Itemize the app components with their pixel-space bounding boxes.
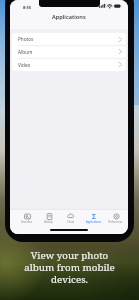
- button[interactable]: Cloud: [59, 212, 82, 227]
- staticText: Applications: [52, 13, 86, 21]
- staticText: View your photo album from mobile device…: [0, 249, 139, 286]
- button[interactable]: Album: [12, 45, 126, 58]
- button[interactable]: Backup: [37, 212, 60, 227]
- staticText: Photos: [18, 36, 117, 42]
- button[interactable]: Σ: [82, 212, 105, 227]
- staticText: Σ: [92, 212, 97, 220]
- staticText: Album: [18, 49, 117, 55]
- staticText: Applications: [86, 220, 101, 224]
- button[interactable]: Favorites: [15, 212, 38, 227]
- staticText: Preferences: [108, 220, 123, 224]
- staticText: 8:55: [23, 5, 32, 11]
- button[interactable]: Preferences: [104, 212, 127, 227]
- staticText: Cloud: [67, 220, 75, 224]
- staticText: Favorites: [21, 220, 33, 224]
- staticText: Backup: [44, 220, 53, 224]
- staticText: Video: [18, 62, 117, 68]
- button[interactable]: Video: [12, 58, 126, 71]
- button[interactable]: Photos: [12, 33, 126, 45]
